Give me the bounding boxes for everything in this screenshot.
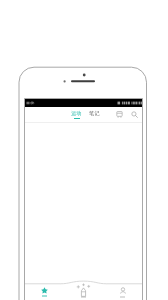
button[interactable]: Profile	[103, 283, 142, 300]
staticText: 笔记	[89, 110, 100, 117]
button[interactable]: Search	[128, 108, 141, 121]
staticText: 运动	[71, 110, 82, 117]
button[interactable]: Favourites	[25, 283, 64, 300]
button[interactable]: Create	[64, 283, 103, 300]
button[interactable]: 笔记	[87, 109, 102, 118]
button[interactable]: 运动	[69, 109, 84, 120]
button[interactable]: Notebook	[113, 108, 126, 121]
